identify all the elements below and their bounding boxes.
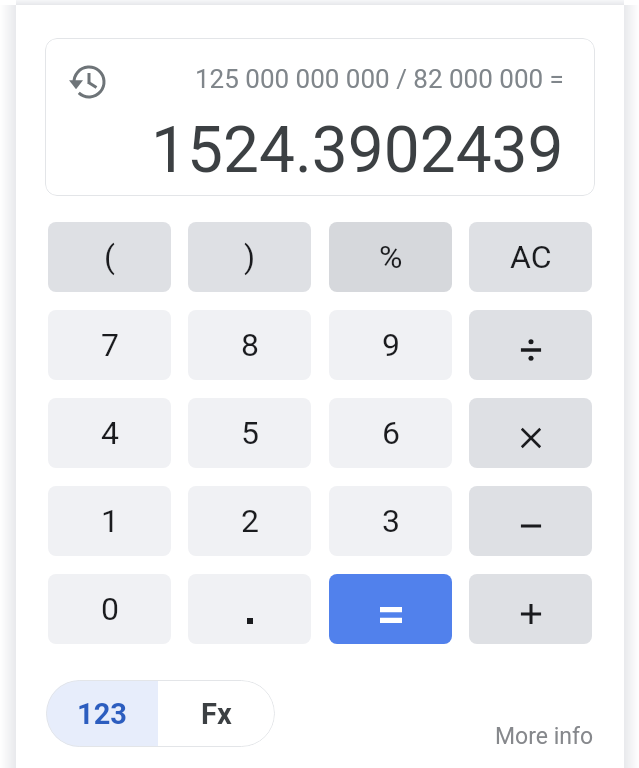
- button[interactable]: 8: [188, 310, 311, 380]
- button[interactable]: 3: [329, 486, 452, 556]
- staticText: 6: [382, 414, 400, 452]
- staticText: 125 000 000 000 / 82 000 000 =: [195, 64, 564, 94]
- button[interactable]: Equals: [329, 574, 452, 644]
- button[interactable]: 9: [329, 310, 452, 380]
- button[interactable]: 6: [329, 398, 452, 468]
- button[interactable]: Decimal point: [188, 574, 311, 644]
- button[interactable]: Fx: [158, 680, 275, 747]
- staticText: 8: [241, 326, 259, 364]
- button[interactable]: ): [188, 222, 311, 292]
- staticText: 9: [382, 326, 400, 364]
- button[interactable]: (: [48, 222, 171, 292]
- staticText: 3: [382, 502, 400, 540]
- staticText: 5: [241, 414, 259, 452]
- button[interactable]: 7: [48, 310, 171, 380]
- staticText: Fx: [201, 697, 232, 731]
- button[interactable]: Multiply: [469, 398, 592, 468]
- button[interactable]: 123: [46, 680, 158, 747]
- staticText: 123: [77, 697, 127, 731]
- button[interactable]: Plus: [469, 574, 592, 644]
- button[interactable]: 5: [188, 398, 311, 468]
- button[interactable]: Minus: [469, 486, 592, 556]
- staticText: %: [379, 238, 403, 276]
- staticText: 4: [101, 414, 119, 452]
- button[interactable]: 4: [48, 398, 171, 468]
- button[interactable]: 0: [48, 574, 171, 644]
- staticText: 7: [101, 326, 119, 364]
- staticText: 0: [101, 590, 119, 628]
- button[interactable]: 1: [48, 486, 171, 556]
- staticText: 1: [101, 502, 119, 540]
- button[interactable]: More info: [487, 715, 602, 758]
- staticText: More info: [495, 723, 594, 750]
- button[interactable]: %: [329, 222, 452, 292]
- staticText: 2: [241, 502, 259, 540]
- button[interactable]: History: [60, 58, 108, 106]
- button[interactable]: 2: [188, 486, 311, 556]
- staticText: 1524.3902439: [151, 113, 564, 188]
- button[interactable]: AC: [469, 222, 592, 292]
- staticText: (: [104, 238, 115, 276]
- staticText: ): [244, 238, 256, 276]
- button[interactable]: Divide: [469, 310, 592, 380]
- staticText: AC: [510, 238, 552, 276]
